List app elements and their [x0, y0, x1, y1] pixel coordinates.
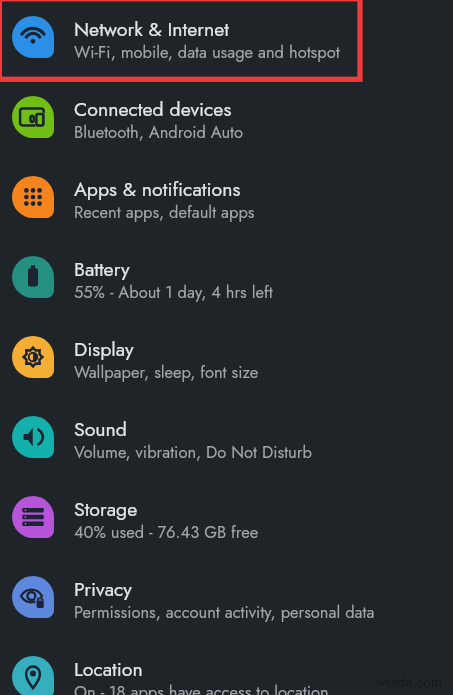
staticText: Apps & notifications	[74, 175, 241, 203]
button[interactable]: Network & Internet	[0, 0, 453, 80]
staticText: Location	[74, 655, 143, 683]
staticText: Volume, vibration, Do Not Disturb	[74, 440, 312, 464]
button[interactable]: Sound	[0, 400, 453, 480]
staticText: On - 18 apps have access to location	[74, 680, 329, 695]
staticText: 40% used - 76.43 GB free	[74, 520, 259, 544]
staticText: Battery	[74, 255, 130, 283]
button[interactable]: Connected devices	[0, 80, 453, 160]
staticText: Recent apps, default apps	[74, 200, 255, 224]
button[interactable]: Privacy	[0, 560, 453, 640]
staticText: Network & Internet	[74, 15, 229, 43]
staticText: Storage	[74, 495, 138, 523]
button[interactable]: Battery	[0, 240, 453, 320]
staticText: Connected devices	[74, 95, 232, 123]
staticText: Display	[74, 335, 134, 363]
staticText: Wi-Fi, mobile, data usage and hotspot	[74, 40, 340, 64]
button[interactable]: Display	[0, 320, 453, 400]
staticText: 55% - About 1 day, 4 hrs left	[74, 280, 273, 304]
button[interactable]: Location	[0, 640, 453, 695]
staticText: Sound	[74, 415, 127, 443]
staticText: Wallpaper, sleep, font size	[74, 360, 259, 384]
staticText: Privacy	[74, 575, 132, 603]
button[interactable]: Apps & notifications	[0, 160, 453, 240]
button[interactable]: Storage	[0, 480, 453, 560]
staticText: Bluetooth, Android Auto	[74, 120, 244, 144]
staticText: Permissions, account activity, personal …	[74, 600, 375, 624]
